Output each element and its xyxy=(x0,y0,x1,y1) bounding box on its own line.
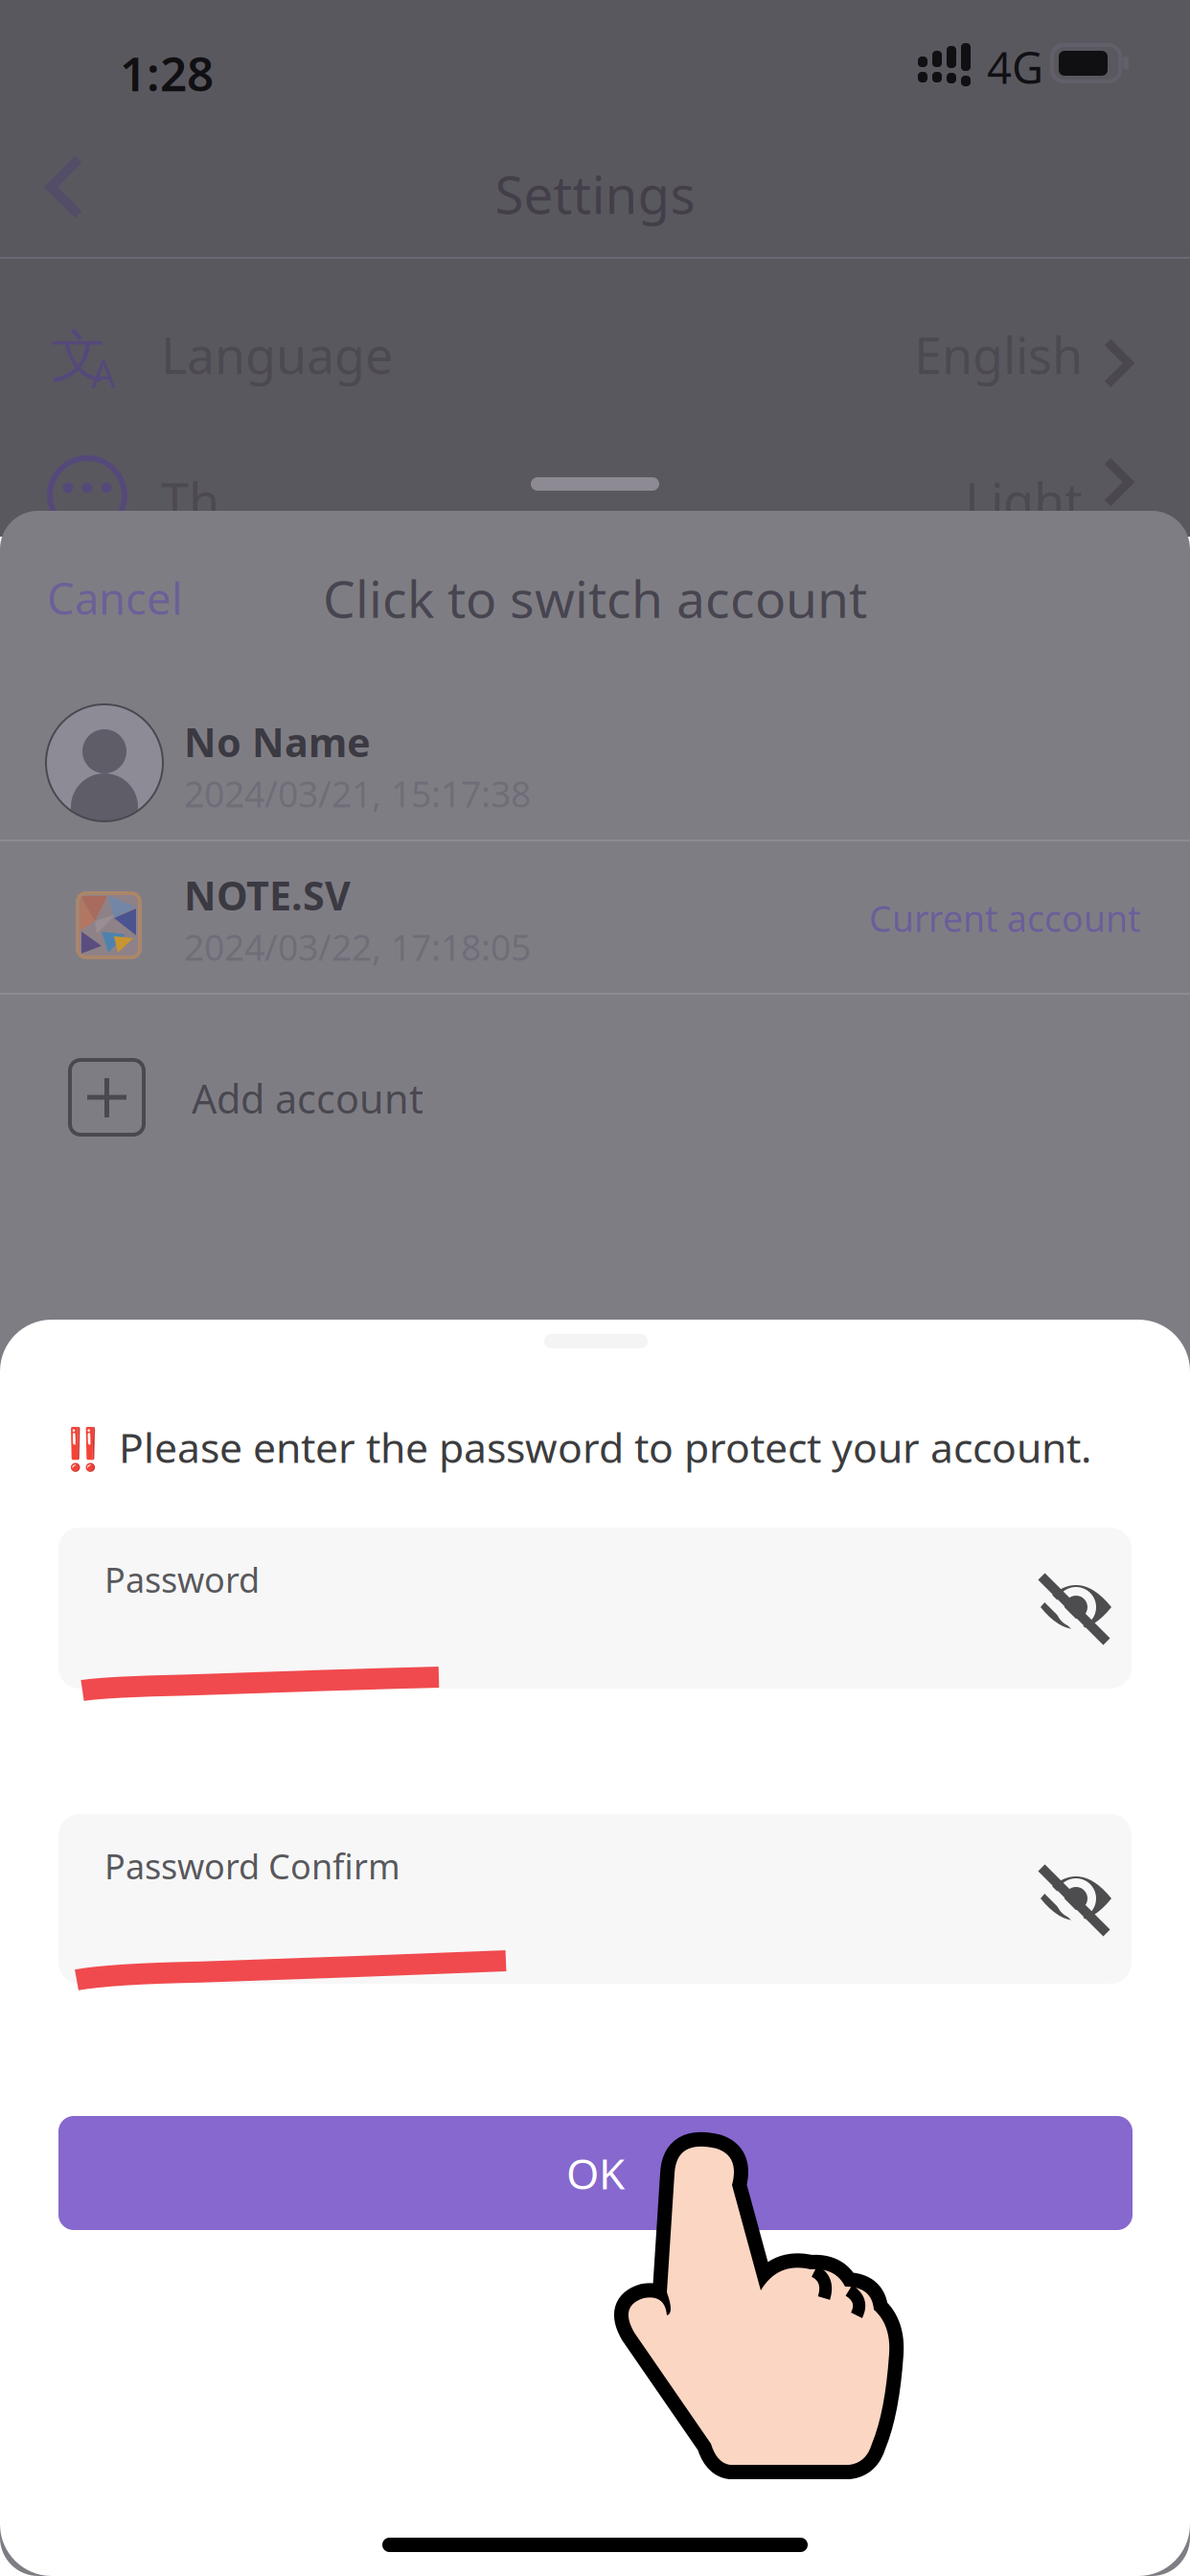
staticText: 1:28 xyxy=(120,41,214,104)
staticText: Language xyxy=(161,322,393,388)
staticText: No Name xyxy=(184,715,371,768)
button[interactable]: NOTE.SV xyxy=(0,841,1190,993)
staticText: A xyxy=(91,348,116,399)
staticText: Th xyxy=(161,467,219,533)
staticText: Light xyxy=(965,467,1083,533)
staticText: Password Confirm xyxy=(104,1843,400,1889)
button[interactable]: OK xyxy=(58,2116,1133,2230)
button[interactable]: Add account xyxy=(0,995,1190,1158)
staticText: Current account xyxy=(869,894,1140,942)
staticText: 文 xyxy=(51,322,107,391)
button[interactable]: Cancel xyxy=(47,562,239,634)
staticText: 2024/03/22, 17:18:05 xyxy=(184,923,531,971)
button[interactable]: Password Confirm xyxy=(58,1814,1132,1984)
staticText: OK xyxy=(566,2145,625,2201)
button[interactable]: No Name xyxy=(0,686,1190,839)
staticText: Add account xyxy=(192,1072,423,1125)
staticText: 4G xyxy=(987,38,1043,96)
staticText: ‼️ Please enter the password to protect … xyxy=(57,1420,1091,1474)
staticText: Cancel xyxy=(47,569,183,627)
staticText: 2024/03/21, 15:17:38 xyxy=(184,770,531,817)
button[interactable]: Password xyxy=(58,1528,1132,1689)
staticText: Password xyxy=(104,1556,260,1602)
staticText: English xyxy=(914,322,1083,388)
staticText: NOTE.SV xyxy=(184,869,351,921)
staticText: Settings xyxy=(495,159,695,228)
staticText: Click to switch account xyxy=(323,564,867,632)
